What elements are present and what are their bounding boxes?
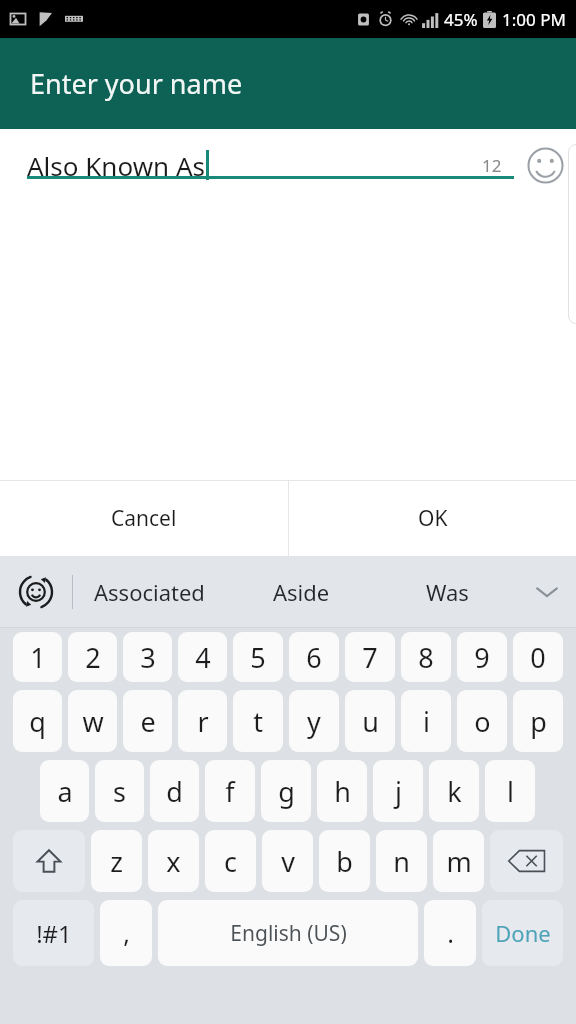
staticText: Done xyxy=(495,918,551,948)
staticText: 0 xyxy=(530,639,546,676)
staticText: 2 xyxy=(85,639,101,676)
button[interactable]: 9 xyxy=(457,632,507,682)
button[interactable]: Insert emoji xyxy=(514,129,576,201)
button[interactable]: i xyxy=(401,690,451,752)
button[interactable]: More suggestions xyxy=(518,556,576,627)
button[interactable]: s xyxy=(95,760,144,822)
button[interactable]: 4 xyxy=(178,632,227,682)
button[interactable]: c xyxy=(205,830,256,892)
staticText: !#1 xyxy=(36,917,72,950)
button[interactable]: 1 xyxy=(13,632,62,682)
staticText: e xyxy=(140,703,156,740)
staticText: 1:00 PM xyxy=(502,8,566,31)
staticText: u xyxy=(362,703,379,740)
button[interactable]: OK xyxy=(289,481,576,556)
staticText: q xyxy=(29,703,46,740)
staticText: n xyxy=(393,843,410,880)
button[interactable]: h xyxy=(317,760,367,822)
button[interactable]: m xyxy=(433,830,484,892)
button[interactable]: n xyxy=(376,830,427,892)
button[interactable]: , xyxy=(100,900,152,966)
staticText: 12 xyxy=(482,154,502,177)
staticText: As xyxy=(176,148,206,183)
staticText: x xyxy=(166,843,181,880)
button[interactable]: g xyxy=(261,760,311,822)
staticText: 3 xyxy=(140,639,156,676)
staticText: v xyxy=(281,843,295,880)
button[interactable]: u xyxy=(345,690,395,752)
staticText: English (US) xyxy=(230,919,347,948)
button[interactable]: 0 xyxy=(513,632,563,682)
button[interactable]: 7 xyxy=(345,632,395,682)
button[interactable]: y xyxy=(289,690,339,752)
staticText: Associated xyxy=(94,577,205,607)
button[interactable]: !#1 xyxy=(13,900,94,966)
staticText: c xyxy=(224,843,237,880)
button[interactable]: v xyxy=(262,830,313,892)
staticText: . xyxy=(447,916,454,950)
staticText: l xyxy=(507,773,514,810)
button[interactable]: r xyxy=(178,690,227,752)
button[interactable]: a xyxy=(40,760,89,822)
staticText: i xyxy=(423,703,430,740)
button[interactable]: 8 xyxy=(401,632,451,682)
button[interactable]: 6 xyxy=(289,632,339,682)
staticText: Aside xyxy=(273,577,330,607)
staticText: 4 xyxy=(195,639,211,676)
staticText: j xyxy=(395,773,402,810)
button[interactable]: q xyxy=(13,690,62,752)
staticText: p xyxy=(530,703,547,740)
staticText: 6 xyxy=(306,639,322,676)
staticText: b xyxy=(336,843,353,880)
button[interactable]: Backspace xyxy=(490,830,563,892)
staticText: 8 xyxy=(418,639,434,676)
staticText: 1 xyxy=(30,639,46,676)
staticText: s xyxy=(113,773,126,810)
staticText: f xyxy=(225,773,235,810)
staticText: 5 xyxy=(250,639,266,676)
staticText: Was xyxy=(426,577,469,607)
button[interactable]: t xyxy=(233,690,283,752)
button[interactable]: Emoji keyboard xyxy=(0,556,72,627)
button[interactable]: 5 xyxy=(233,632,283,682)
button[interactable]: b xyxy=(319,830,370,892)
staticText: w xyxy=(82,703,104,740)
button[interactable]: l xyxy=(485,760,535,822)
button[interactable]: 3 xyxy=(123,632,172,682)
staticText: t xyxy=(253,703,263,740)
button[interactable]: English (US) xyxy=(158,900,418,966)
staticText: Cancel xyxy=(111,504,177,533)
button[interactable]: Associated xyxy=(73,556,225,627)
staticText: m xyxy=(446,843,472,880)
button[interactable]: p xyxy=(513,690,563,752)
staticText: d xyxy=(166,773,183,810)
staticText: a xyxy=(57,773,73,810)
staticText: 45% xyxy=(444,8,478,31)
staticText: h xyxy=(334,773,351,810)
button[interactable]: Done xyxy=(482,900,563,966)
button[interactable]: Aside xyxy=(225,556,377,627)
button[interactable]: d xyxy=(150,760,199,822)
button[interactable]: z xyxy=(91,830,142,892)
button[interactable]: Shift xyxy=(13,830,85,892)
button[interactable]: j xyxy=(373,760,423,822)
staticText: OK xyxy=(418,504,448,533)
staticText: k xyxy=(447,773,462,810)
button[interactable]: f xyxy=(205,760,255,822)
button[interactable]: x xyxy=(148,830,199,892)
staticText: , xyxy=(123,916,130,950)
staticText: z xyxy=(110,843,123,880)
button[interactable]: Cancel xyxy=(0,481,288,556)
button[interactable]: 2 xyxy=(68,632,117,682)
staticText: r xyxy=(197,703,209,740)
button[interactable]: . xyxy=(424,900,476,966)
button[interactable]: k xyxy=(429,760,479,822)
staticText: o xyxy=(474,703,491,740)
button[interactable]: w xyxy=(68,690,117,752)
button[interactable]: Was xyxy=(377,556,518,627)
staticText: y xyxy=(307,703,321,740)
staticText: Also Known xyxy=(27,148,176,183)
button[interactable]: o xyxy=(457,690,507,752)
staticText: Enter your name xyxy=(30,65,243,102)
button[interactable]: e xyxy=(123,690,172,752)
